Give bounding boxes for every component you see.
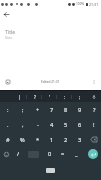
staticText: 4 xyxy=(50,121,54,129)
staticText: ? xyxy=(34,94,36,100)
staticText: , xyxy=(22,121,24,129)
staticText: / xyxy=(17,150,20,158)
staticText: ; xyxy=(22,106,24,114)
button[interactable]: ! xyxy=(87,117,101,132)
button[interactable]: : xyxy=(57,91,72,102)
button[interactable]: 9 xyxy=(73,102,87,117)
other: Backspace xyxy=(87,132,101,147)
button[interactable]: 6 xyxy=(73,117,87,132)
staticText: Edited 21:31 xyxy=(41,80,60,84)
button[interactable]: ; xyxy=(72,91,87,102)
staticText: 8 xyxy=(64,106,68,114)
staticText: * xyxy=(36,136,40,144)
button[interactable]: Home xyxy=(46,168,55,173)
staticText: 7 xyxy=(50,106,54,114)
staticText: 0 xyxy=(48,150,52,158)
staticText: 9 xyxy=(78,106,82,114)
staticText: - xyxy=(37,121,39,129)
button[interactable]: : xyxy=(0,102,15,117)
button[interactable]: Back xyxy=(0,8,13,21)
button[interactable]: . xyxy=(0,117,15,132)
staticText: ? xyxy=(93,106,96,114)
staticText: . xyxy=(7,121,9,129)
staticText: = xyxy=(61,150,65,158)
button[interactable]: - xyxy=(30,117,45,132)
staticText: 1 xyxy=(50,136,54,144)
staticText: ! xyxy=(93,121,95,129)
button[interactable]: = xyxy=(56,147,69,161)
button[interactable]: ' xyxy=(42,91,57,102)
staticText: : xyxy=(64,94,66,100)
button[interactable]: 4 xyxy=(45,117,59,132)
button[interactable]: Emoji xyxy=(0,147,13,161)
button[interactable]: % xyxy=(15,132,30,147)
staticText: : xyxy=(7,106,9,114)
button[interactable]: * xyxy=(30,132,45,147)
staticText: 100% xyxy=(76,2,85,6)
button[interactable]: Voice input xyxy=(87,91,101,102)
button[interactable]: Add image xyxy=(2,76,14,88)
staticText: 21:31 xyxy=(89,2,99,7)
button[interactable]: + xyxy=(30,102,45,117)
staticText: 3 xyxy=(78,136,82,144)
staticText: 2 xyxy=(64,136,68,144)
button[interactable]: 2 xyxy=(59,132,73,147)
staticText: | xyxy=(18,94,21,100)
button[interactable]: Enter xyxy=(88,149,98,159)
button[interactable]: ? xyxy=(87,102,101,117)
staticText: _ xyxy=(75,150,78,158)
staticText: # xyxy=(6,136,10,144)
button[interactable]: ? xyxy=(27,91,42,102)
button[interactable]: 1 xyxy=(45,132,59,147)
staticText: Title xyxy=(5,29,16,36)
button[interactable]: | xyxy=(12,91,27,102)
button[interactable]: 7 xyxy=(45,102,59,117)
button[interactable]: 0 xyxy=(43,147,56,161)
staticText: ' xyxy=(49,94,51,100)
button[interactable]: Backspace xyxy=(87,132,101,147)
staticText: + xyxy=(36,106,40,114)
staticText: Note xyxy=(5,36,13,40)
button[interactable]: 5 xyxy=(59,117,73,132)
button[interactable]: _ xyxy=(69,147,84,161)
button[interactable]: 8 xyxy=(59,102,73,117)
button[interactable]: More options xyxy=(88,76,100,88)
staticText: 6 xyxy=(78,121,82,129)
button[interactable]: / xyxy=(13,147,24,161)
staticText: % xyxy=(20,136,25,144)
button[interactable]: ; xyxy=(15,102,30,117)
staticText: 5 xyxy=(64,121,68,129)
staticText: ; xyxy=(79,94,81,100)
button[interactable]: 3 xyxy=(73,132,87,147)
button[interactable]: , xyxy=(15,117,30,132)
button[interactable]: # xyxy=(0,132,15,147)
